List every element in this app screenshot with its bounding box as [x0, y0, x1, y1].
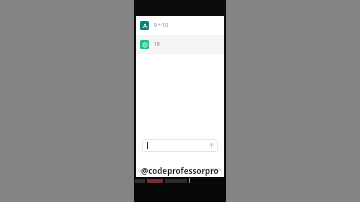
staticText: @codeprofessorpro	[141, 165, 219, 176]
button[interactable]: Send	[142, 139, 218, 152]
staticText: 9 + 10	[154, 22, 169, 29]
staticText: ChatG	[138, 168, 149, 173]
other: Send	[208, 142, 215, 149]
staticText: v1.0 beta	[208, 168, 222, 172]
staticText: 19	[154, 41, 160, 48]
button[interactable]: 9 + 10	[136, 16, 224, 35]
button[interactable]: 19	[136, 35, 224, 54]
